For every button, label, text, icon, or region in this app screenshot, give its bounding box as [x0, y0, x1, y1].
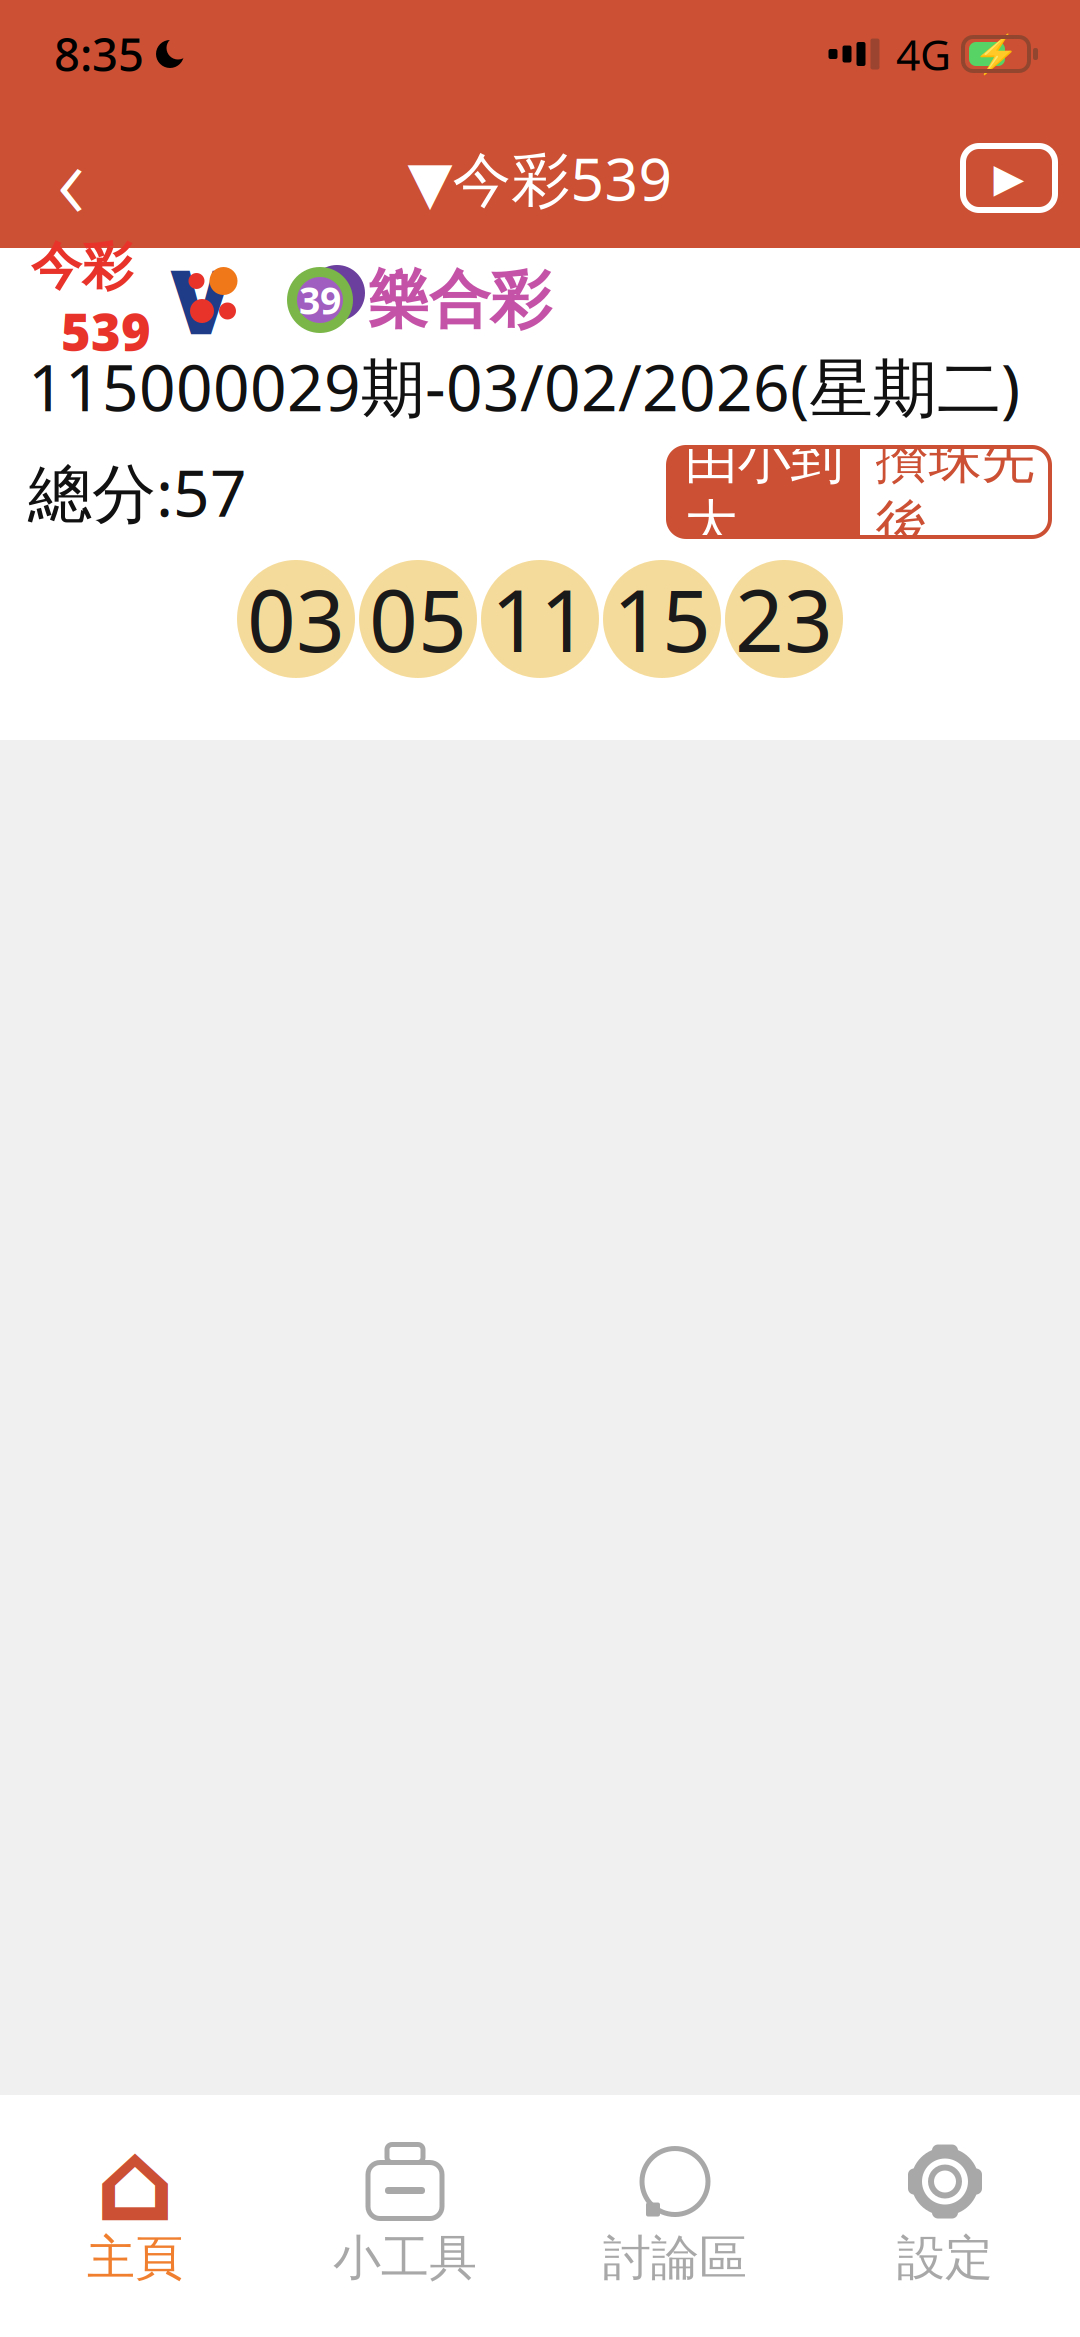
staticText: 539	[61, 297, 151, 365]
staticText: 今彩	[31, 235, 133, 297]
staticText: ▶	[993, 155, 1024, 201]
staticText: 23	[735, 562, 833, 676]
staticText: ⚡	[973, 33, 1019, 75]
staticText: 由小到大	[684, 426, 843, 557]
staticText: 討論區	[603, 2228, 747, 2287]
staticText: 05	[369, 562, 467, 676]
staticText: 攅珠先後	[875, 426, 1034, 557]
staticText: 4G	[896, 26, 951, 82]
staticText: 8:35	[54, 24, 144, 84]
button[interactable]: 由小到大	[668, 447, 860, 537]
staticText: ⌂	[95, 2118, 175, 2245]
staticText: ▼今彩539	[407, 139, 672, 217]
staticText: V	[170, 242, 231, 358]
staticText: 39	[299, 275, 341, 325]
staticText: 主頁	[87, 2228, 183, 2287]
button[interactable]: Play video	[954, 118, 1064, 238]
staticText: 樂合彩	[368, 262, 551, 338]
staticText: 總分:57	[28, 449, 247, 534]
staticText: 115000029期-03/02/2026(星期二)	[28, 344, 1020, 429]
button[interactable]: 設定	[810, 2136, 1080, 2296]
button[interactable]: 攅珠先後	[860, 447, 1050, 537]
button[interactable]: 小工具	[270, 2136, 540, 2296]
staticText: 11	[491, 562, 589, 676]
staticText: 設定	[897, 2228, 993, 2287]
button[interactable]: 討論區	[540, 2136, 810, 2296]
button[interactable]: ⌂	[0, 2136, 270, 2296]
staticText: 15	[613, 562, 711, 676]
staticText: 03	[247, 562, 345, 676]
button[interactable]: Back	[16, 118, 126, 238]
staticText: ‹	[57, 107, 85, 249]
staticText: 小工具	[333, 2228, 477, 2287]
